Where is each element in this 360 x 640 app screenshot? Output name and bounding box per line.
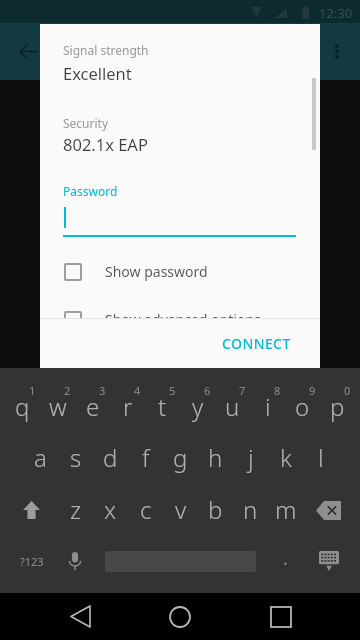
button[interactable]: h xyxy=(198,431,233,483)
button[interactable]: 3 xyxy=(75,368,110,424)
staticText: c xyxy=(140,493,152,526)
staticText: o xyxy=(295,390,310,423)
staticText: e xyxy=(86,390,100,423)
button[interactable]: l xyxy=(303,431,338,483)
button[interactable]: s xyxy=(58,431,93,483)
button[interactable]: 7 xyxy=(215,368,250,424)
button[interactable]: a xyxy=(23,431,58,483)
button[interactable]: g xyxy=(163,431,198,483)
staticText: w xyxy=(49,390,67,423)
staticText: CONNECT xyxy=(222,334,291,353)
button[interactable]: j xyxy=(233,431,268,483)
button[interactable]: Shift xyxy=(0,484,57,536)
button[interactable]: m xyxy=(268,483,303,535)
button[interactable]: Recents xyxy=(251,593,311,640)
staticText: q xyxy=(15,390,30,423)
button[interactable]: CONNECT xyxy=(215,324,297,362)
staticText: f xyxy=(142,441,150,474)
button[interactable]: Navigate up xyxy=(4,27,52,75)
staticText: 12:30 xyxy=(319,4,353,22)
staticText: 1 xyxy=(29,383,36,398)
staticText: 9 xyxy=(309,383,316,398)
button[interactable]: 0 xyxy=(320,368,355,424)
staticText: r xyxy=(123,390,133,423)
button[interactable]: n xyxy=(233,483,268,535)
staticText: 0 xyxy=(344,383,351,398)
button[interactable]: 9 xyxy=(285,368,320,424)
button[interactable]: f xyxy=(128,431,163,483)
staticText: . xyxy=(283,546,288,571)
staticText: z xyxy=(70,493,82,526)
staticText: g xyxy=(173,441,188,474)
staticText: Security xyxy=(63,115,109,131)
staticText: 2 xyxy=(64,383,71,398)
staticText: Signal strength xyxy=(63,42,149,58)
button[interactable]: Home xyxy=(150,593,210,640)
staticText: u xyxy=(225,390,240,423)
button[interactable]: k xyxy=(268,431,303,483)
button[interactable]: Show advanced options xyxy=(40,300,320,318)
button[interactable]: z xyxy=(58,483,93,535)
button[interactable]: Space xyxy=(105,538,256,584)
staticText: n xyxy=(243,493,258,526)
button[interactable]: 2 xyxy=(40,368,75,424)
button[interactable]: ?123 xyxy=(4,538,60,584)
button[interactable]: . xyxy=(261,538,309,584)
button[interactable]: More options xyxy=(313,27,360,75)
staticText: s xyxy=(70,441,82,474)
button[interactable]: b xyxy=(198,483,233,535)
button[interactable]: d xyxy=(93,431,128,483)
staticText: v xyxy=(175,493,187,526)
staticText: 7 xyxy=(239,383,246,398)
button[interactable]: 6 xyxy=(180,368,215,424)
staticText: Show password xyxy=(105,262,208,281)
staticText: ?123 xyxy=(20,554,44,569)
staticText: Password xyxy=(63,183,118,199)
button[interactable]: Voice input xyxy=(51,538,99,584)
staticText: p xyxy=(330,390,345,423)
button[interactable]: 5 xyxy=(145,368,180,424)
staticText: 802.1x EAP xyxy=(63,133,148,155)
staticText: 4 xyxy=(134,383,141,398)
staticText: j xyxy=(248,441,254,474)
button[interactable]: Back xyxy=(50,593,110,640)
staticText: a xyxy=(34,441,47,474)
staticText: 8 xyxy=(274,383,281,398)
button[interactable]: Show password xyxy=(40,252,320,292)
button[interactable]: 4 xyxy=(110,368,145,424)
staticText: x xyxy=(104,493,117,526)
button[interactable]: 1 xyxy=(5,368,40,424)
staticText: k xyxy=(280,441,292,474)
staticText: y xyxy=(192,390,204,423)
staticText: Excellent xyxy=(63,62,132,84)
staticText: Show advanced options xyxy=(105,310,261,318)
staticText: 6 xyxy=(204,383,211,398)
staticText: b xyxy=(208,493,223,526)
staticText: t xyxy=(158,390,167,423)
staticText: d xyxy=(103,441,118,474)
staticText: h xyxy=(208,441,223,474)
staticText: m xyxy=(275,493,297,526)
button[interactable]: x xyxy=(93,483,128,535)
button[interactable]: Switch keyboard xyxy=(301,538,357,584)
staticText: 5 xyxy=(169,383,176,398)
button[interactable]: c xyxy=(128,483,163,535)
staticText: l xyxy=(318,441,324,474)
button[interactable]: v xyxy=(163,483,198,535)
staticText: 3 xyxy=(99,383,106,398)
staticText: i xyxy=(265,390,271,423)
button[interactable]: 8 xyxy=(250,368,285,424)
button[interactable]: Delete xyxy=(300,484,357,536)
